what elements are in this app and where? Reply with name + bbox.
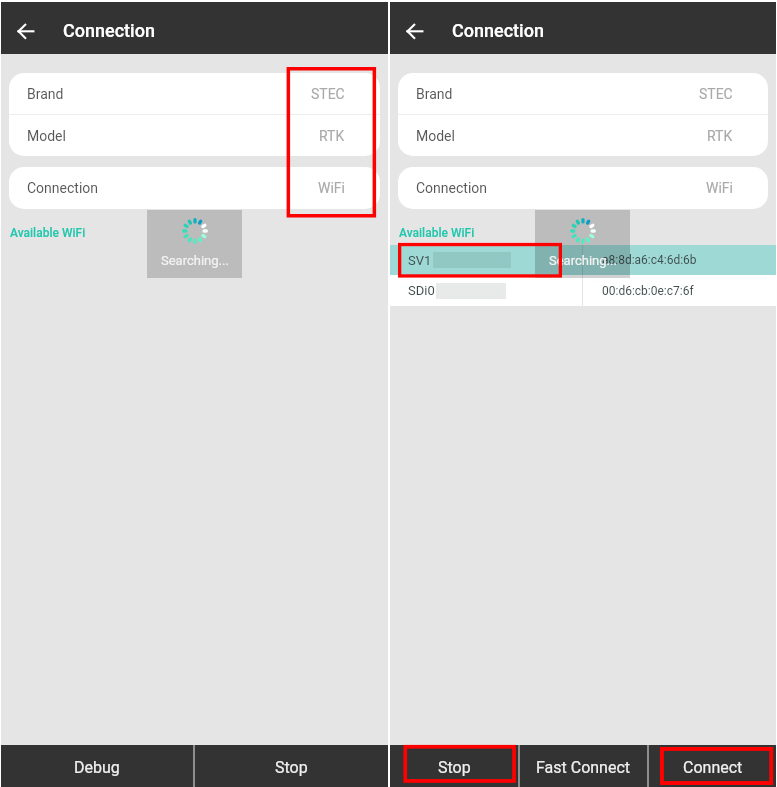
button[interactable]: Brand [398, 73, 768, 114]
staticText: WiFi [318, 180, 345, 196]
staticText: Stop [438, 758, 471, 777]
button[interactable]: Fast Connect [520, 745, 647, 787]
button[interactable]: Model [9, 115, 380, 156]
button[interactable]: Back [400, 15, 430, 45]
staticText: SDi0 [408, 283, 435, 298]
staticText: Connection [27, 180, 99, 196]
button[interactable]: Debug [1, 745, 193, 787]
staticText: Available WiFi [399, 226, 475, 240]
staticText: RTK [319, 128, 345, 144]
staticText: SV1 [408, 253, 432, 268]
staticText: Connection [452, 20, 544, 41]
staticText: Searching... [161, 253, 229, 268]
staticText: Model [416, 128, 455, 144]
staticText: Connection [63, 20, 155, 41]
staticText: Connect [683, 758, 743, 777]
staticText: Available WiFi [10, 226, 86, 240]
staticText: Connection [416, 180, 488, 196]
button[interactable]: SV1 [390, 245, 776, 275]
button[interactable]: Model [398, 115, 768, 156]
staticText: Brand [416, 86, 453, 102]
staticText: RTK [707, 128, 733, 144]
staticText: Debug [74, 758, 120, 777]
staticText: Brand [27, 86, 64, 102]
staticText: Stop [275, 758, 308, 777]
staticText: STEC [699, 86, 733, 102]
button[interactable]: SDi0 [390, 275, 776, 306]
button[interactable]: Brand [9, 73, 380, 114]
staticText: 00:d6:cb:0e:c7:6f [602, 284, 694, 298]
staticText: Model [27, 128, 66, 144]
staticText: Searching... [549, 253, 617, 268]
staticText: Fast Connect [536, 758, 631, 777]
staticText: a8:8d:a6:c4:6d:6b [602, 253, 697, 267]
button[interactable]: Connection [398, 167, 768, 209]
button[interactable]: Stop [390, 745, 518, 787]
button[interactable]: Connect [649, 745, 776, 787]
staticText: WiFi [706, 180, 733, 196]
button[interactable]: Stop [195, 745, 388, 787]
staticText: STEC [311, 86, 345, 102]
button[interactable]: Connection [9, 167, 380, 209]
button[interactable]: Back [11, 15, 41, 45]
